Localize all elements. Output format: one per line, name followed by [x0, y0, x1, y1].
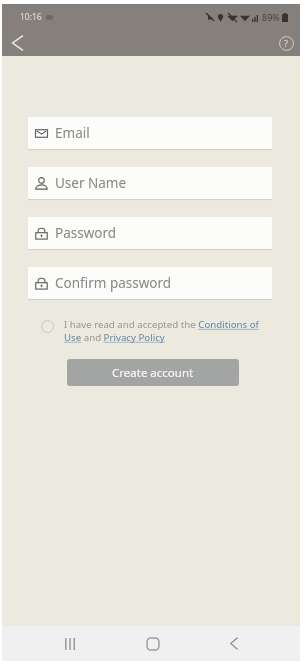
staticText: 89%	[262, 11, 280, 23]
staticText: ?	[284, 37, 288, 49]
staticText: Create account	[112, 365, 194, 381]
staticText: Email	[55, 124, 90, 142]
button[interactable]: Create account	[67, 359, 239, 386]
button[interactable]: Home	[135, 626, 171, 661]
staticText: 10:16	[20, 11, 42, 23]
button[interactable]: Back	[216, 626, 252, 661]
button[interactable]: Password	[28, 217, 272, 249]
button[interactable]: Confirm password	[28, 267, 272, 299]
staticText: User Name	[55, 174, 127, 192]
button[interactable]: User Name	[28, 167, 272, 199]
staticText: Confirm password	[55, 274, 172, 292]
button[interactable]: Recent apps	[52, 626, 88, 661]
button[interactable]: Back	[4, 30, 31, 56]
button[interactable]: Help	[273, 30, 299, 56]
button[interactable]: Email	[28, 117, 272, 149]
staticText: I have read and accepted the Conditions …	[64, 318, 264, 344]
staticText: Password	[55, 224, 117, 242]
button[interactable]: Accept terms and conditions	[39, 318, 55, 334]
